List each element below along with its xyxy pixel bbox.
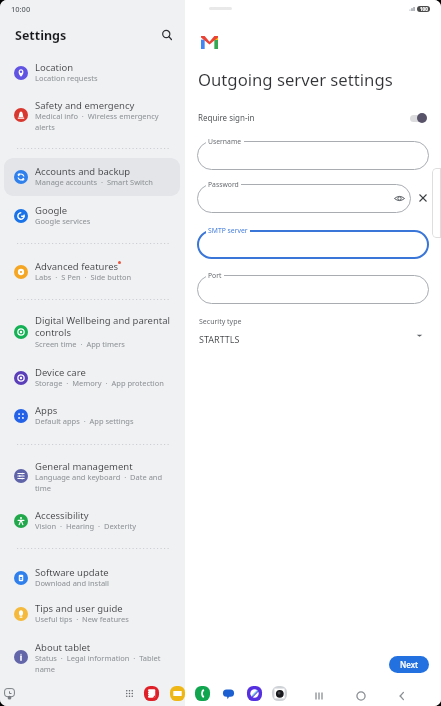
button[interactable] xyxy=(4,637,180,681)
staticText: Settings xyxy=(15,27,67,44)
staticText: Password xyxy=(208,180,239,189)
button[interactable]: Back xyxy=(396,690,408,702)
staticText: Vision · Hearing · Dexterity xyxy=(35,521,183,531)
staticText: Google services xyxy=(35,216,183,226)
button[interactable]: Phone xyxy=(195,686,210,701)
button[interactable] xyxy=(4,57,180,93)
button[interactable]: Require sign-in toggle xyxy=(407,113,427,124)
button[interactable]: Camera xyxy=(272,686,287,701)
button[interactable]: Smart widget xyxy=(4,688,15,699)
staticText: Useful tips · New features xyxy=(35,614,183,624)
staticText: Security type xyxy=(199,317,242,327)
button[interactable]: Internet xyxy=(247,686,262,701)
button[interactable] xyxy=(4,95,180,139)
staticText: Device care xyxy=(35,366,183,379)
staticText: Software update xyxy=(35,566,183,579)
button[interactable] xyxy=(4,505,180,541)
staticText: Location requests xyxy=(35,73,183,83)
staticText: Digital Wellbeing and parental controls xyxy=(35,314,183,339)
staticText: General management xyxy=(35,460,183,473)
staticText: Medical info · Wireless emergency alerts xyxy=(35,111,183,132)
staticText: Outgoing server settings xyxy=(198,68,393,91)
staticText: Labs · S Pen · Side button xyxy=(35,272,183,282)
staticText: STARTTLS xyxy=(199,333,240,345)
staticText: Google xyxy=(35,204,183,217)
button[interactable]: Edge panel xyxy=(432,168,441,238)
button[interactable] xyxy=(197,330,427,350)
staticText: Screen time · App timers xyxy=(35,339,183,349)
staticText: Advanced features xyxy=(35,260,183,273)
staticText: Location xyxy=(35,61,183,74)
staticText: About tablet xyxy=(35,641,183,654)
staticText: Username xyxy=(208,137,242,146)
button[interactable] xyxy=(4,161,180,197)
staticText: 100 xyxy=(420,6,428,12)
staticText: Apps xyxy=(35,404,183,417)
button[interactable] xyxy=(197,275,429,304)
staticText: Require sign-in xyxy=(198,112,255,123)
button[interactable]: Recents xyxy=(313,690,325,702)
button[interactable]: Next xyxy=(389,656,429,673)
button[interactable] xyxy=(4,456,180,500)
staticText: Download and install xyxy=(35,578,183,588)
button[interactable] xyxy=(4,256,180,292)
button[interactable]: Home xyxy=(355,690,367,702)
staticText: Storage · Memory · App protection xyxy=(35,378,183,388)
staticText: Tips and user guide xyxy=(35,602,183,615)
staticText: Accounts and backup xyxy=(35,165,183,178)
button[interactable] xyxy=(4,200,180,236)
button[interactable] xyxy=(197,230,429,259)
staticText: 10:00 xyxy=(11,4,31,14)
button[interactable] xyxy=(197,184,411,213)
button[interactable]: Show password xyxy=(394,193,405,204)
staticText: SMTP server xyxy=(208,226,248,235)
button[interactable]: Search xyxy=(161,29,173,41)
staticText: Safety and emergency xyxy=(35,99,183,112)
button[interactable] xyxy=(4,310,180,354)
staticText: Next xyxy=(400,659,419,670)
button[interactable]: My Files xyxy=(170,686,185,701)
button[interactable] xyxy=(4,598,180,634)
button[interactable] xyxy=(4,562,180,598)
staticText: Language and keyboard · Date and time xyxy=(35,472,183,493)
button[interactable] xyxy=(4,400,180,436)
button[interactable] xyxy=(197,141,429,170)
button[interactable]: Apps xyxy=(124,688,135,699)
staticText: Port xyxy=(208,271,222,280)
staticText: Status · Legal information · Tablet name xyxy=(35,653,183,674)
button[interactable]: Clear xyxy=(418,193,428,203)
button[interactable] xyxy=(4,362,180,398)
staticText: Accessibility xyxy=(35,509,183,522)
button[interactable]: Messages xyxy=(221,686,236,701)
staticText: Manage accounts · Smart Switch xyxy=(35,177,183,187)
button[interactable]: Samsung Notes xyxy=(144,686,159,701)
staticText: Default apps · App settings xyxy=(35,416,183,426)
